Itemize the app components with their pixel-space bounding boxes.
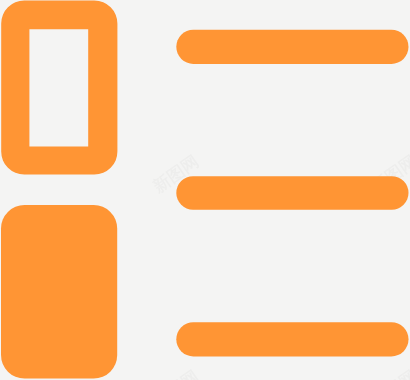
button[interactable]: List layout icon [0, 0, 410, 380]
